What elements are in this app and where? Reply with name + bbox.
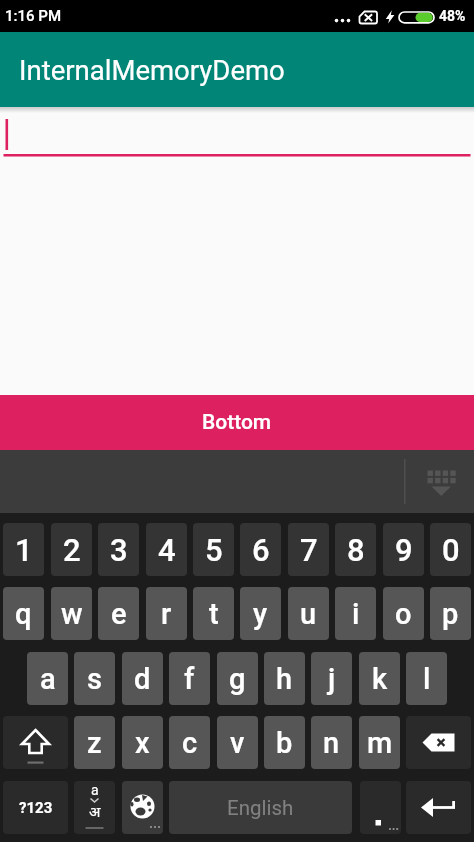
button[interactable]: 0 bbox=[430, 523, 471, 576]
button[interactable]: b bbox=[264, 716, 305, 769]
staticText: n bbox=[323, 726, 340, 760]
staticText: q bbox=[15, 597, 32, 631]
button[interactable]: j bbox=[311, 652, 352, 705]
button[interactable]: q bbox=[3, 587, 44, 640]
staticText: t bbox=[209, 597, 219, 631]
staticText: l bbox=[423, 662, 431, 696]
staticText: o bbox=[395, 597, 412, 631]
button[interactable]: o bbox=[383, 587, 424, 640]
staticText: 9 bbox=[395, 532, 413, 568]
button[interactable]: i bbox=[335, 587, 376, 640]
staticText: s bbox=[87, 662, 102, 696]
staticText: 7 bbox=[300, 532, 318, 568]
staticText: 8 bbox=[347, 532, 365, 568]
button[interactable]: z bbox=[74, 716, 115, 769]
button[interactable]: n bbox=[311, 716, 352, 769]
staticText: k bbox=[372, 662, 388, 696]
staticText: w bbox=[61, 597, 83, 631]
staticText: p bbox=[442, 597, 459, 631]
staticText: InternalMemoryDemo bbox=[19, 54, 285, 86]
staticText: English bbox=[227, 796, 294, 820]
button[interactable] bbox=[360, 781, 401, 834]
button[interactable]: s bbox=[74, 652, 115, 705]
button[interactable]: 3 bbox=[98, 523, 139, 576]
button[interactable] bbox=[0, 107, 474, 395]
staticText: j bbox=[328, 662, 336, 696]
staticText: 4 bbox=[158, 532, 176, 568]
staticText: 48% bbox=[439, 8, 466, 24]
button[interactable]: u bbox=[288, 587, 329, 640]
button[interactable]: t bbox=[193, 587, 234, 640]
button[interactable]: 8 bbox=[335, 523, 376, 576]
staticText: 5 bbox=[205, 532, 223, 568]
staticText: f bbox=[184, 662, 195, 696]
button[interactable]: Bottom bbox=[0, 395, 474, 450]
staticText: 0 bbox=[442, 532, 460, 568]
button[interactable]: r bbox=[146, 587, 187, 640]
staticText: 6 bbox=[252, 532, 270, 568]
staticText: e bbox=[111, 597, 127, 631]
staticText: c bbox=[182, 726, 198, 760]
button[interactable]: 6 bbox=[240, 523, 281, 576]
button[interactable] bbox=[406, 781, 471, 834]
button[interactable]: a bbox=[74, 781, 115, 834]
button[interactable]: 7 bbox=[288, 523, 329, 576]
button[interactable]: h bbox=[264, 652, 305, 705]
button[interactable] bbox=[3, 716, 68, 769]
staticText: v bbox=[230, 726, 245, 760]
staticText: a bbox=[91, 782, 99, 798]
button[interactable]: ?123 bbox=[3, 781, 68, 834]
staticText: x bbox=[135, 726, 150, 760]
button[interactable]: f bbox=[169, 652, 210, 705]
staticText: z bbox=[87, 726, 102, 760]
staticText: अ bbox=[89, 801, 101, 821]
button[interactable]: English bbox=[169, 781, 352, 834]
button[interactable]: d bbox=[122, 652, 163, 705]
staticText: b bbox=[276, 726, 293, 760]
staticText: u bbox=[300, 597, 317, 631]
staticText: r bbox=[161, 597, 172, 631]
button[interactable]: g bbox=[217, 652, 258, 705]
button[interactable]: 2 bbox=[51, 523, 92, 576]
button[interactable] bbox=[122, 781, 163, 834]
staticText: 1 bbox=[15, 532, 33, 568]
staticText: ?123 bbox=[19, 799, 53, 817]
button[interactable]: 9 bbox=[383, 523, 424, 576]
staticText: Bottom bbox=[202, 410, 272, 435]
staticText: m bbox=[367, 726, 393, 760]
button[interactable]: v bbox=[217, 716, 258, 769]
staticText: d bbox=[134, 662, 151, 696]
staticText: 3 bbox=[110, 532, 128, 568]
staticText: i bbox=[352, 597, 360, 631]
staticText: h bbox=[276, 662, 293, 696]
button[interactable]: k bbox=[359, 652, 400, 705]
button[interactable]: 5 bbox=[193, 523, 234, 576]
staticText: 1:16 PM bbox=[5, 7, 62, 25]
staticText: g bbox=[229, 662, 246, 696]
staticText: y bbox=[253, 597, 268, 631]
button[interactable]: p bbox=[430, 587, 471, 640]
button[interactable]: y bbox=[240, 587, 281, 640]
button[interactable]: x bbox=[122, 716, 163, 769]
staticText: 2 bbox=[63, 532, 81, 568]
staticText: a bbox=[40, 662, 56, 696]
button[interactable]: 1 bbox=[3, 523, 44, 576]
button[interactable]: 4 bbox=[146, 523, 187, 576]
button[interactable] bbox=[406, 716, 471, 769]
button[interactable]: l bbox=[406, 652, 447, 705]
button[interactable]: m bbox=[359, 716, 400, 769]
button[interactable] bbox=[405, 450, 474, 513]
button[interactable]: a bbox=[27, 652, 68, 705]
button[interactable]: w bbox=[51, 587, 92, 640]
button[interactable]: e bbox=[98, 587, 139, 640]
button[interactable]: c bbox=[169, 716, 210, 769]
